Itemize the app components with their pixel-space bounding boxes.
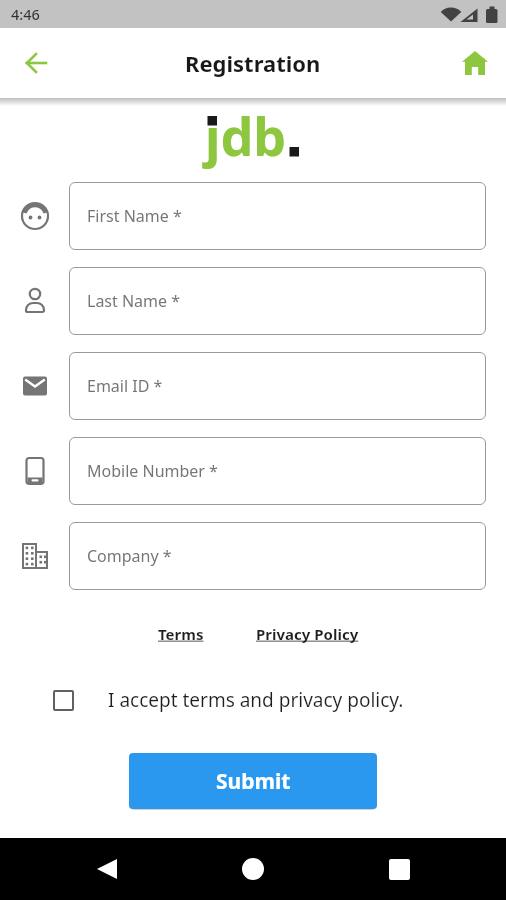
staticText: Last Name * (87, 290, 181, 312)
staticText: Company * (87, 545, 172, 567)
button[interactable]: Terms (158, 624, 204, 644)
button[interactable]: Submit (129, 753, 377, 809)
staticText: I accept terms and privacy policy. (108, 687, 404, 713)
staticText: 4:46 (11, 4, 40, 24)
staticText: jdb (205, 100, 287, 171)
button[interactable]: First Name * (69, 182, 486, 250)
staticText: First Name * (87, 205, 182, 227)
button[interactable] (18, 45, 54, 81)
staticText: Submit (216, 767, 291, 796)
staticText: Registration (185, 48, 321, 78)
button[interactable]: I accept terms and privacy policy. (53, 687, 404, 713)
staticText: . (287, 100, 302, 171)
button[interactable]: Privacy Policy (256, 624, 359, 644)
button[interactable] (236, 852, 270, 886)
button[interactable] (382, 852, 416, 886)
button[interactable]: Email ID * (69, 352, 486, 420)
button[interactable]: Last Name * (69, 267, 486, 335)
button[interactable] (90, 852, 124, 886)
staticText: Mobile Number * (87, 460, 218, 482)
staticText: Email ID * (87, 375, 163, 397)
button[interactable] (457, 45, 493, 81)
button[interactable]: Mobile Number * (69, 437, 486, 505)
button[interactable]: Company * (69, 522, 486, 590)
